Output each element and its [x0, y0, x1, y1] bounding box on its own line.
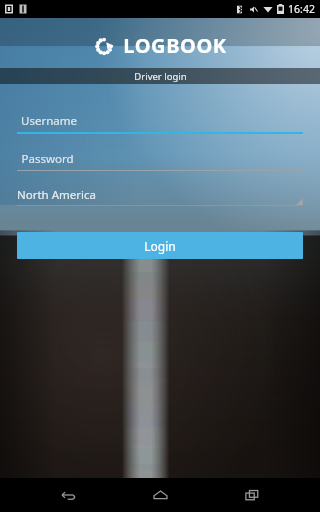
staticText: North America — [17, 187, 96, 203]
staticText: 16:42 — [288, 2, 315, 16]
button[interactable]: Login — [17, 232, 303, 259]
button[interactable]: Password — [17, 148, 303, 171]
button[interactable]: Home — [136, 478, 184, 512]
staticText: Password — [21, 151, 74, 167]
staticText: LOGBOOK — [123, 32, 227, 59]
button[interactable]: North America — [17, 184, 303, 206]
staticText: Login — [144, 238, 176, 254]
staticText: Driver login — [134, 70, 187, 83]
button[interactable]: Back — [44, 478, 92, 512]
staticText: Username — [21, 113, 77, 129]
button[interactable]: Username — [17, 110, 303, 134]
button[interactable]: Recent apps — [228, 478, 276, 512]
